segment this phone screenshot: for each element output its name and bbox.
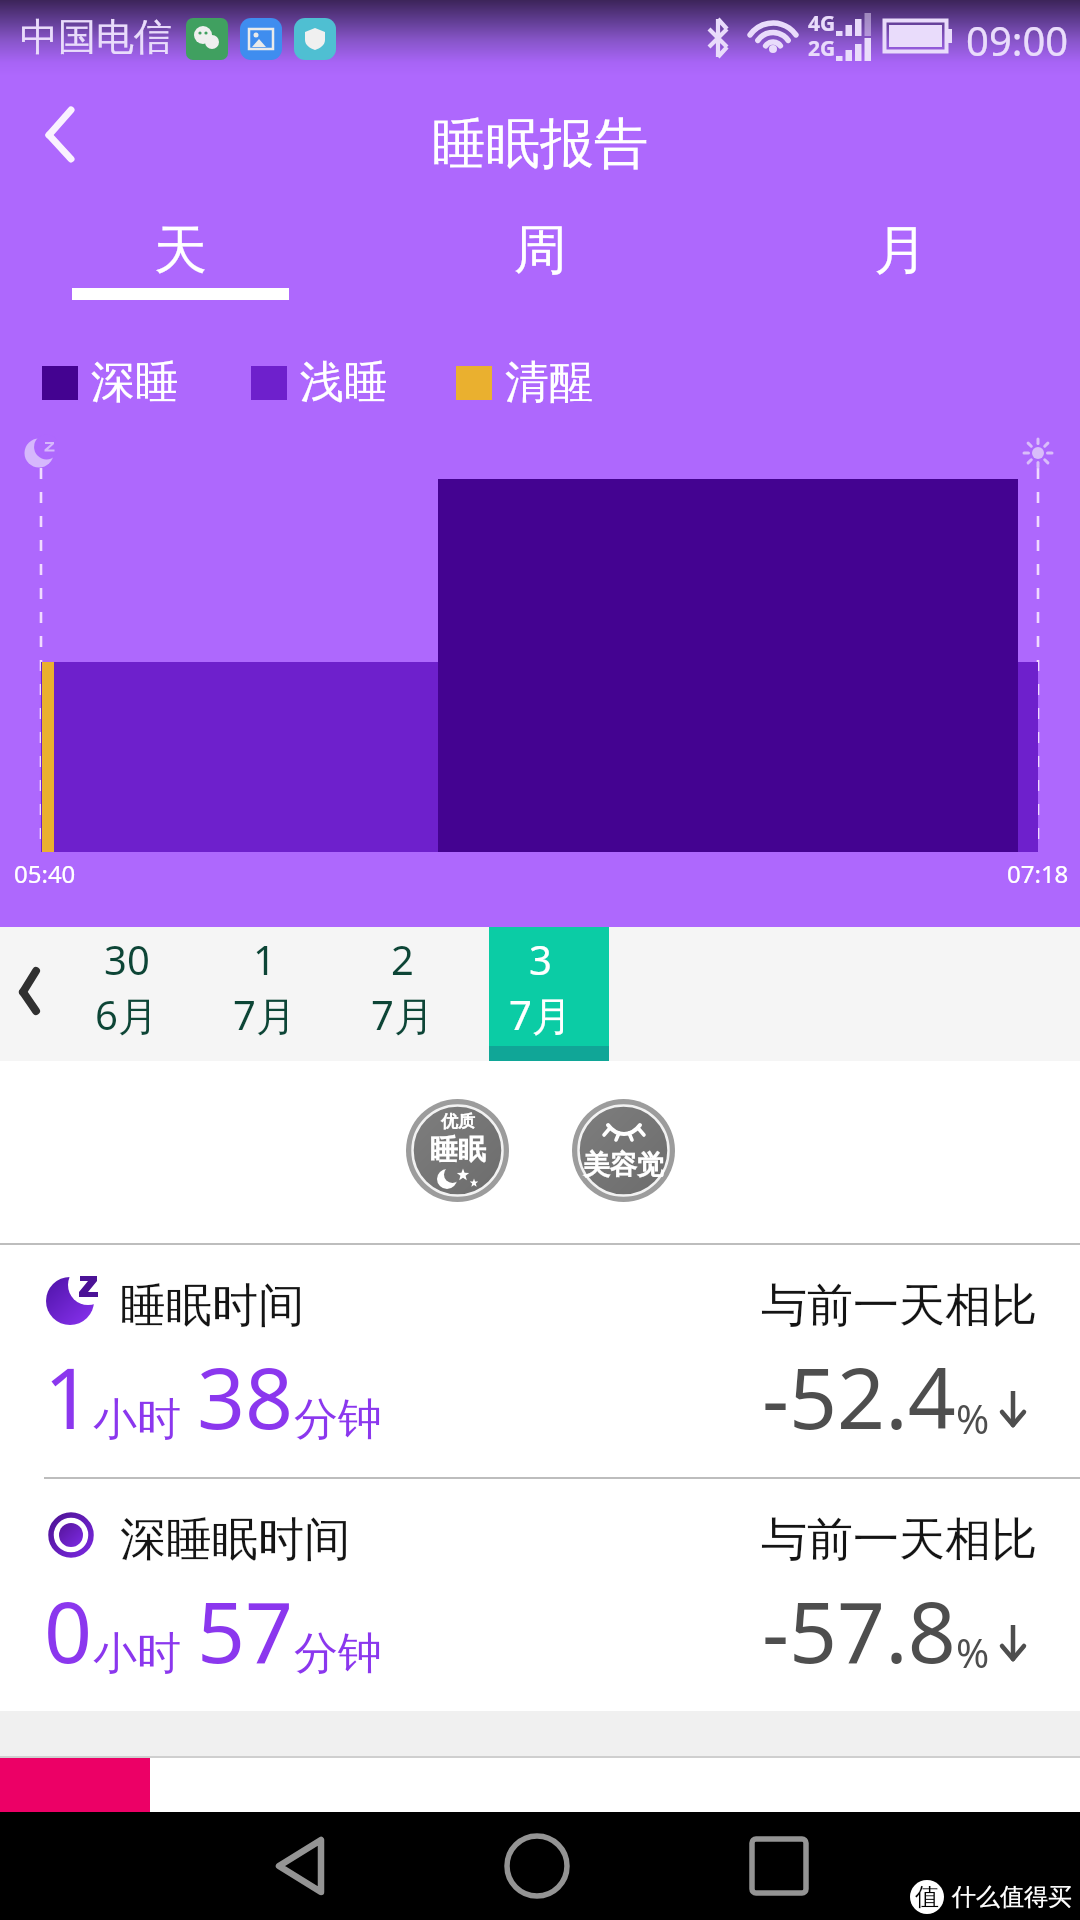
staticText: 月 <box>874 217 927 284</box>
staticText: 优质 <box>441 1111 475 1132</box>
staticText: 深睡眠时间 <box>120 1511 350 1569</box>
staticText: 7月 <box>233 987 296 1042</box>
staticText: 值 <box>915 1882 939 1912</box>
staticText: 1 <box>253 932 276 986</box>
staticText: 7月 <box>509 987 572 1042</box>
staticText: 浅睡 <box>300 355 388 410</box>
staticText: -57.8 <box>762 1573 956 1687</box>
button[interactable]: 相册通知 <box>240 18 282 60</box>
button[interactable]: 微信通知 <box>186 18 228 60</box>
staticText: 深睡 <box>91 355 179 410</box>
staticText: 分钟 <box>294 1392 382 1447</box>
staticText: 睡眠 <box>430 1132 486 1167</box>
staticText: 6月 <box>95 987 158 1042</box>
staticText: 睡眠报告 <box>432 110 648 178</box>
staticText: 2 <box>391 932 414 986</box>
button[interactable]: 主屏幕 <box>457 1812 617 1920</box>
staticText: 小时 <box>93 1626 181 1681</box>
staticText: 57 <box>197 1573 294 1687</box>
staticText: 0 <box>44 1573 93 1687</box>
button[interactable]: 最近任务 <box>699 1812 859 1920</box>
button[interactable]: 优质睡眠徽章 <box>406 1099 509 1202</box>
staticText: % <box>956 1391 990 1445</box>
button[interactable]: 返回 <box>0 80 120 190</box>
button[interactable]: 天 <box>0 206 360 306</box>
staticText: 与前一天相比 <box>761 1277 1037 1335</box>
staticText: 1 <box>44 1339 93 1453</box>
staticText: 4G <box>808 9 836 38</box>
staticText: 3 <box>529 932 552 986</box>
staticText: 与前一天相比 <box>761 1511 1037 1569</box>
staticText: 小时 <box>93 1392 181 1447</box>
staticText: 清醒 <box>505 355 593 410</box>
button[interactable]: 美容觉徽章 <box>572 1099 675 1202</box>
staticText: 09:00 <box>966 13 1069 67</box>
button[interactable]: 3 <box>471 927 609 1061</box>
button[interactable]: 2 <box>333 927 471 1061</box>
staticText: -52.4 <box>762 1339 956 1453</box>
button[interactable]: 30 <box>57 927 195 1061</box>
staticText: 30 <box>104 932 150 986</box>
staticText: 38 <box>197 1339 294 1453</box>
staticText: 美容觉 <box>583 1148 664 1182</box>
staticText: 7月 <box>371 987 434 1042</box>
staticText: 什么值得买 <box>952 1882 1072 1912</box>
staticText: 中国电信 <box>20 13 172 61</box>
button[interactable]: 月 <box>720 206 1080 306</box>
staticText: % <box>956 1625 990 1679</box>
button[interactable]: 返回 <box>220 1812 380 1920</box>
staticText: 05:40 <box>14 857 76 890</box>
staticText: 睡眠时间 <box>120 1277 304 1335</box>
button[interactable]: 上一周 <box>0 927 57 1061</box>
staticText: 分钟 <box>294 1626 382 1681</box>
staticText: 07:18 <box>1007 857 1069 890</box>
staticText: 2G <box>808 34 836 63</box>
button[interactable]: 1 <box>195 927 333 1061</box>
staticText: 天 <box>154 217 207 284</box>
button[interactable]: 周 <box>360 206 720 306</box>
staticText: 周 <box>514 217 567 284</box>
button[interactable]: 安全中心通知 <box>294 18 336 60</box>
